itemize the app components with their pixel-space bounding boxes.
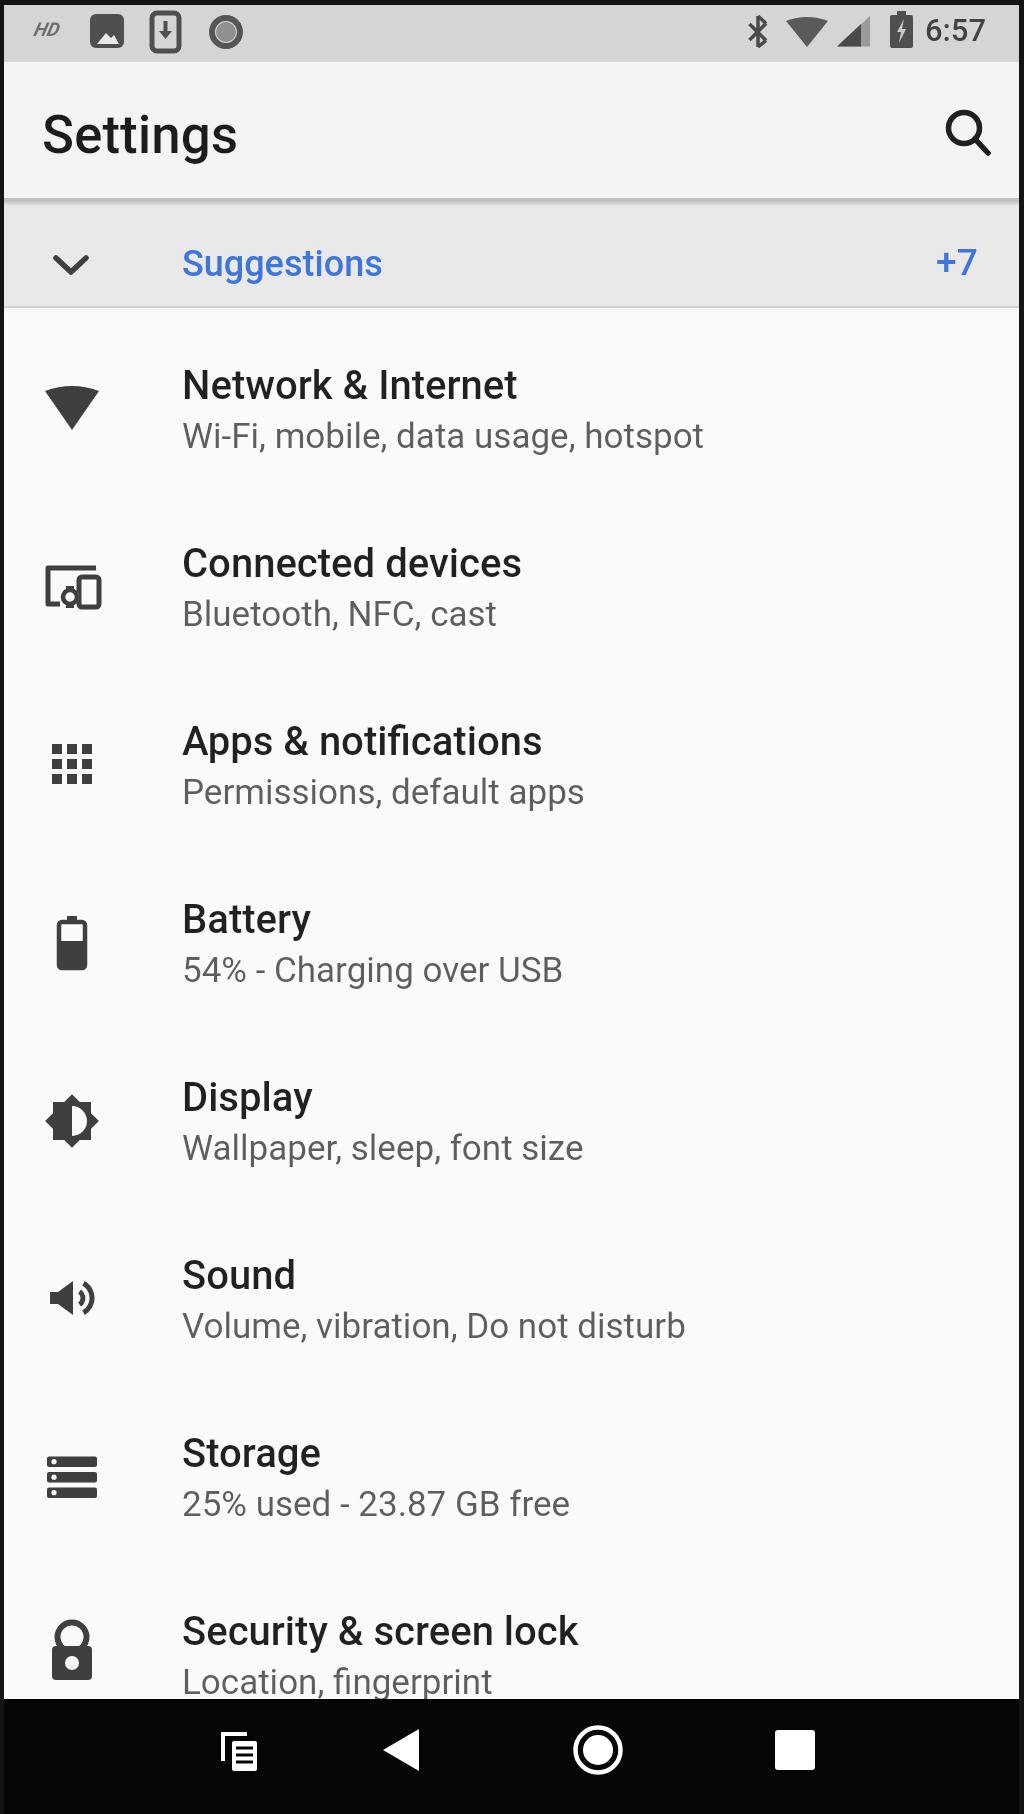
- staticText: 25% used - 23.87 GB free: [182, 1484, 571, 1525]
- staticText: Display: [182, 1074, 313, 1121]
- staticText: Wi-Fi, mobile, data usage, hotspot: [182, 416, 705, 457]
- button[interactable]: [256, 1699, 512, 1814]
- button[interactable]: [768, 1699, 1024, 1814]
- staticText: Permissions, default apps: [182, 772, 585, 813]
- button[interactable]: [0, 1699, 256, 1814]
- staticText: Wallpaper, sleep, font size: [182, 1128, 584, 1169]
- button[interactable]: Apps & notifications: [0, 666, 1024, 844]
- button[interactable]: Security & screen lock: [0, 1556, 1024, 1699]
- staticText: Storage: [182, 1430, 321, 1477]
- staticText: Connected devices: [182, 540, 523, 587]
- staticText: Location, fingerprint: [182, 1662, 493, 1699]
- staticText: Security & screen lock: [182, 1608, 579, 1655]
- button[interactable]: Suggestions: [0, 200, 1024, 308]
- staticText: HD: [33, 18, 59, 40]
- button[interactable]: [934, 98, 998, 162]
- staticText: Battery: [182, 896, 311, 943]
- button[interactable]: Battery: [0, 844, 1024, 1022]
- staticText: Apps & notifications: [182, 718, 543, 765]
- staticText: +7: [936, 241, 978, 284]
- staticText: Volume, vibration, Do not disturb: [182, 1306, 686, 1347]
- button[interactable]: Display: [0, 1022, 1024, 1200]
- button[interactable]: Network & Internet: [0, 310, 1024, 488]
- staticText: 6:57: [925, 12, 987, 48]
- staticText: Settings: [42, 104, 239, 166]
- staticText: Network & Internet: [182, 362, 518, 409]
- button[interactable]: Sound: [0, 1200, 1024, 1378]
- staticText: 54% - Charging over USB: [182, 950, 564, 991]
- button[interactable]: [512, 1699, 768, 1814]
- staticText: Suggestions: [182, 243, 383, 285]
- staticText: Sound: [182, 1252, 297, 1299]
- staticText: Bluetooth, NFC, cast: [182, 594, 498, 635]
- button[interactable]: Storage: [0, 1378, 1024, 1556]
- button[interactable]: Connected devices: [0, 488, 1024, 666]
